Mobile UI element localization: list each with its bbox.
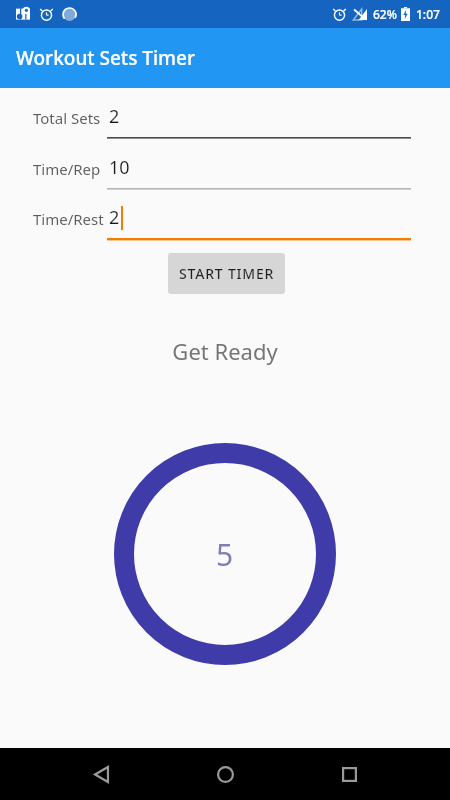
button[interactable]: Recent apps <box>327 752 371 796</box>
staticText: 2 <box>109 205 120 230</box>
staticText: 62% <box>373 6 397 22</box>
button[interactable]: 2 <box>107 100 411 141</box>
button[interactable]: 2 <box>107 201 411 242</box>
staticText: 1:07 <box>416 6 440 22</box>
staticText: Time/Rest <box>33 209 104 229</box>
button[interactable]: START TIMER <box>168 253 285 294</box>
button[interactable]: Back <box>79 752 123 796</box>
staticText: START TIMER <box>179 264 275 283</box>
staticText: Time/Rep <box>33 159 101 179</box>
button[interactable]: 10 <box>107 151 411 192</box>
staticText: Get Ready <box>172 336 278 366</box>
staticText: Total Sets <box>33 108 101 128</box>
staticText: Workout Sets Timer <box>16 45 196 71</box>
staticText: 10 <box>109 155 130 180</box>
staticText: 5 <box>216 534 234 575</box>
button[interactable]: Home <box>203 752 247 796</box>
staticText: 2 <box>109 104 120 129</box>
